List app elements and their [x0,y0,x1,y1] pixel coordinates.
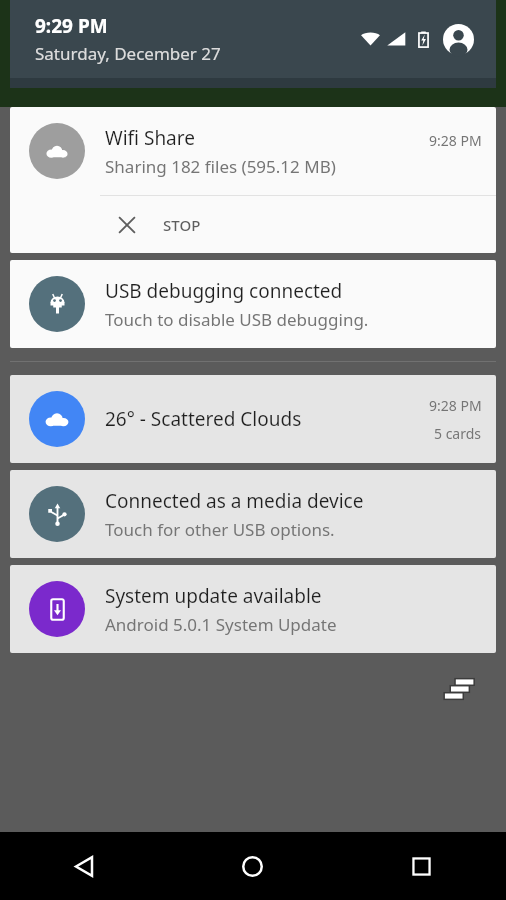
button[interactable]: System update available [10,565,496,653]
staticText: STOP [163,215,201,235]
staticText: Saturday, December 27 [35,42,221,65]
button[interactable]: Home [168,832,337,900]
button[interactable]: Connected as a media device [10,470,496,558]
button[interactable]: Clear all notifications [436,666,482,712]
staticText: 9:29 PM [35,13,108,39]
staticText: USB debugging connected [105,278,343,304]
button[interactable]: Back [0,832,168,900]
button[interactable]: USB debugging connected [10,260,496,348]
staticText: 26° - Scattered Clouds [105,406,302,432]
button[interactable]: STOP [10,196,496,253]
button[interactable]: Recent apps [337,832,506,900]
staticText: 9:28 PM [429,131,482,150]
staticText: 9:28 PM [429,396,482,415]
staticText: Sharing 182 files (595.12 MB) [105,155,336,178]
button[interactable]: 26° - Scattered Clouds [10,375,496,463]
staticText: System update available [105,583,322,609]
staticText: Android 5.0.1 System Update [105,613,337,636]
staticText: 5 cards [434,424,482,443]
staticText: Touch for other USB options. [105,518,335,541]
button[interactable]: Wifi Share [10,107,496,253]
staticText: Touch to disable USB debugging. [105,308,369,331]
button[interactable]: User profile [443,24,474,55]
staticText: Wifi Share [105,125,195,151]
staticText: Connected as a media device [105,488,364,514]
